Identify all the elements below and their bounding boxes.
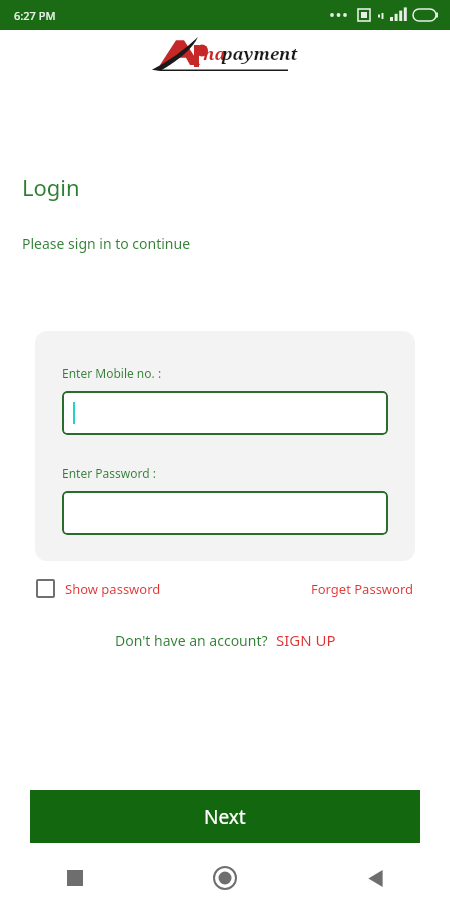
staticText: Please sign in to continue xyxy=(22,234,191,253)
staticText: na xyxy=(203,42,226,65)
button[interactable]: SIGN UP xyxy=(276,630,336,650)
button[interactable]: Home xyxy=(150,856,300,900)
staticText: 6:27 PM xyxy=(14,8,56,23)
staticText: payment xyxy=(222,42,298,65)
staticText: Login xyxy=(22,172,80,202)
staticText: Show password xyxy=(65,580,161,598)
staticText: Next xyxy=(204,804,246,830)
button[interactable] xyxy=(62,391,388,435)
button[interactable]: Recent apps xyxy=(0,856,150,900)
staticText: Forget Password xyxy=(311,580,414,598)
staticText: Enter Password : xyxy=(62,465,156,481)
button[interactable]: Back xyxy=(300,856,450,900)
staticText: SIGN UP xyxy=(276,630,336,650)
button[interactable]: Next xyxy=(30,790,420,843)
staticText: Don't have an account? xyxy=(115,631,268,650)
button[interactable]: Show password xyxy=(36,579,161,598)
staticText: Enter Mobile no. : xyxy=(62,365,162,381)
button[interactable]: Forget Password xyxy=(311,580,414,598)
button[interactable] xyxy=(62,491,388,535)
